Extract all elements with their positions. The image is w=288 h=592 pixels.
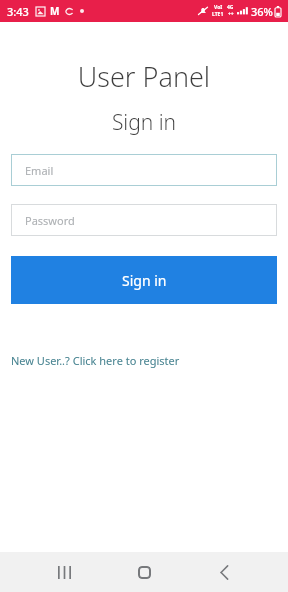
button[interactable]: Sign in [11,256,277,304]
staticText: ++ [228,11,234,18]
button[interactable]: Home [120,552,168,592]
button[interactable]: Back [200,552,248,592]
button[interactable]: Email [11,154,277,186]
staticText: Sign in [122,271,167,290]
staticText: New User..? Click here to register [11,353,180,368]
button[interactable]: Recents [40,552,88,592]
staticText: VoI [214,4,223,11]
staticText: LTE1 [212,11,224,18]
staticText: Sign in [0,108,288,137]
staticText: 3:43 [7,4,29,19]
button[interactable]: New User..? Click here to register [11,353,180,368]
staticText: Email [25,163,54,178]
staticText: User Panel [0,58,288,95]
staticText: 36% [251,4,273,19]
button[interactable]: Password [11,204,277,236]
staticText: 4G [227,4,234,11]
staticText: Password [25,213,75,228]
staticText: M [50,4,60,18]
